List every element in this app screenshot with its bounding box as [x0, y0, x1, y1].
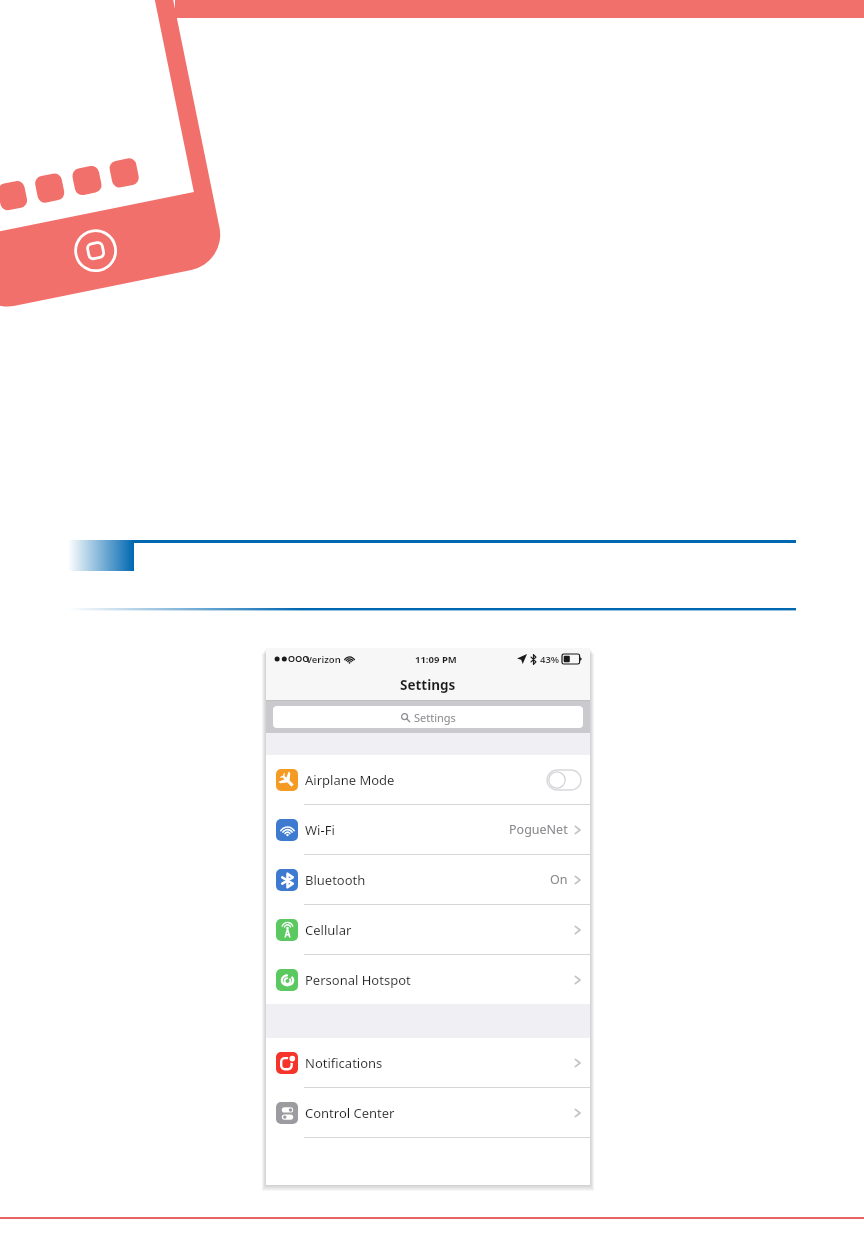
staticText: Control Center	[305, 1104, 395, 1122]
staticText: Bluetooth	[305, 871, 366, 889]
staticText: Verizon	[306, 653, 341, 666]
button[interactable]: Wi-Fi	[266, 805, 590, 854]
staticText: On	[550, 871, 568, 888]
staticText: PogueNet	[509, 821, 568, 838]
button[interactable]: Airplane Mode	[266, 755, 590, 804]
button[interactable]: Personal Hotspot	[266, 955, 590, 1004]
staticText: Personal Hotspot	[305, 971, 411, 989]
staticText: Wi-Fi	[305, 821, 335, 839]
staticText: 11:09 PM	[415, 653, 457, 666]
button[interactable]: Control Center	[266, 1088, 590, 1137]
button[interactable]: Bluetooth	[266, 855, 590, 904]
staticText: Settings	[414, 710, 456, 725]
staticText: Notifications	[305, 1054, 383, 1072]
button[interactable]: Airplane Mode toggle, off	[547, 770, 581, 790]
button[interactable]: Notifications	[266, 1038, 590, 1087]
button[interactable]: Settings	[266, 701, 590, 733]
button[interactable]: Cellular	[266, 905, 590, 954]
staticText: Airplane Mode	[305, 771, 395, 789]
staticText: Cellular	[305, 921, 352, 939]
staticText: Settings	[400, 676, 456, 694]
staticText: 43%	[540, 653, 560, 666]
